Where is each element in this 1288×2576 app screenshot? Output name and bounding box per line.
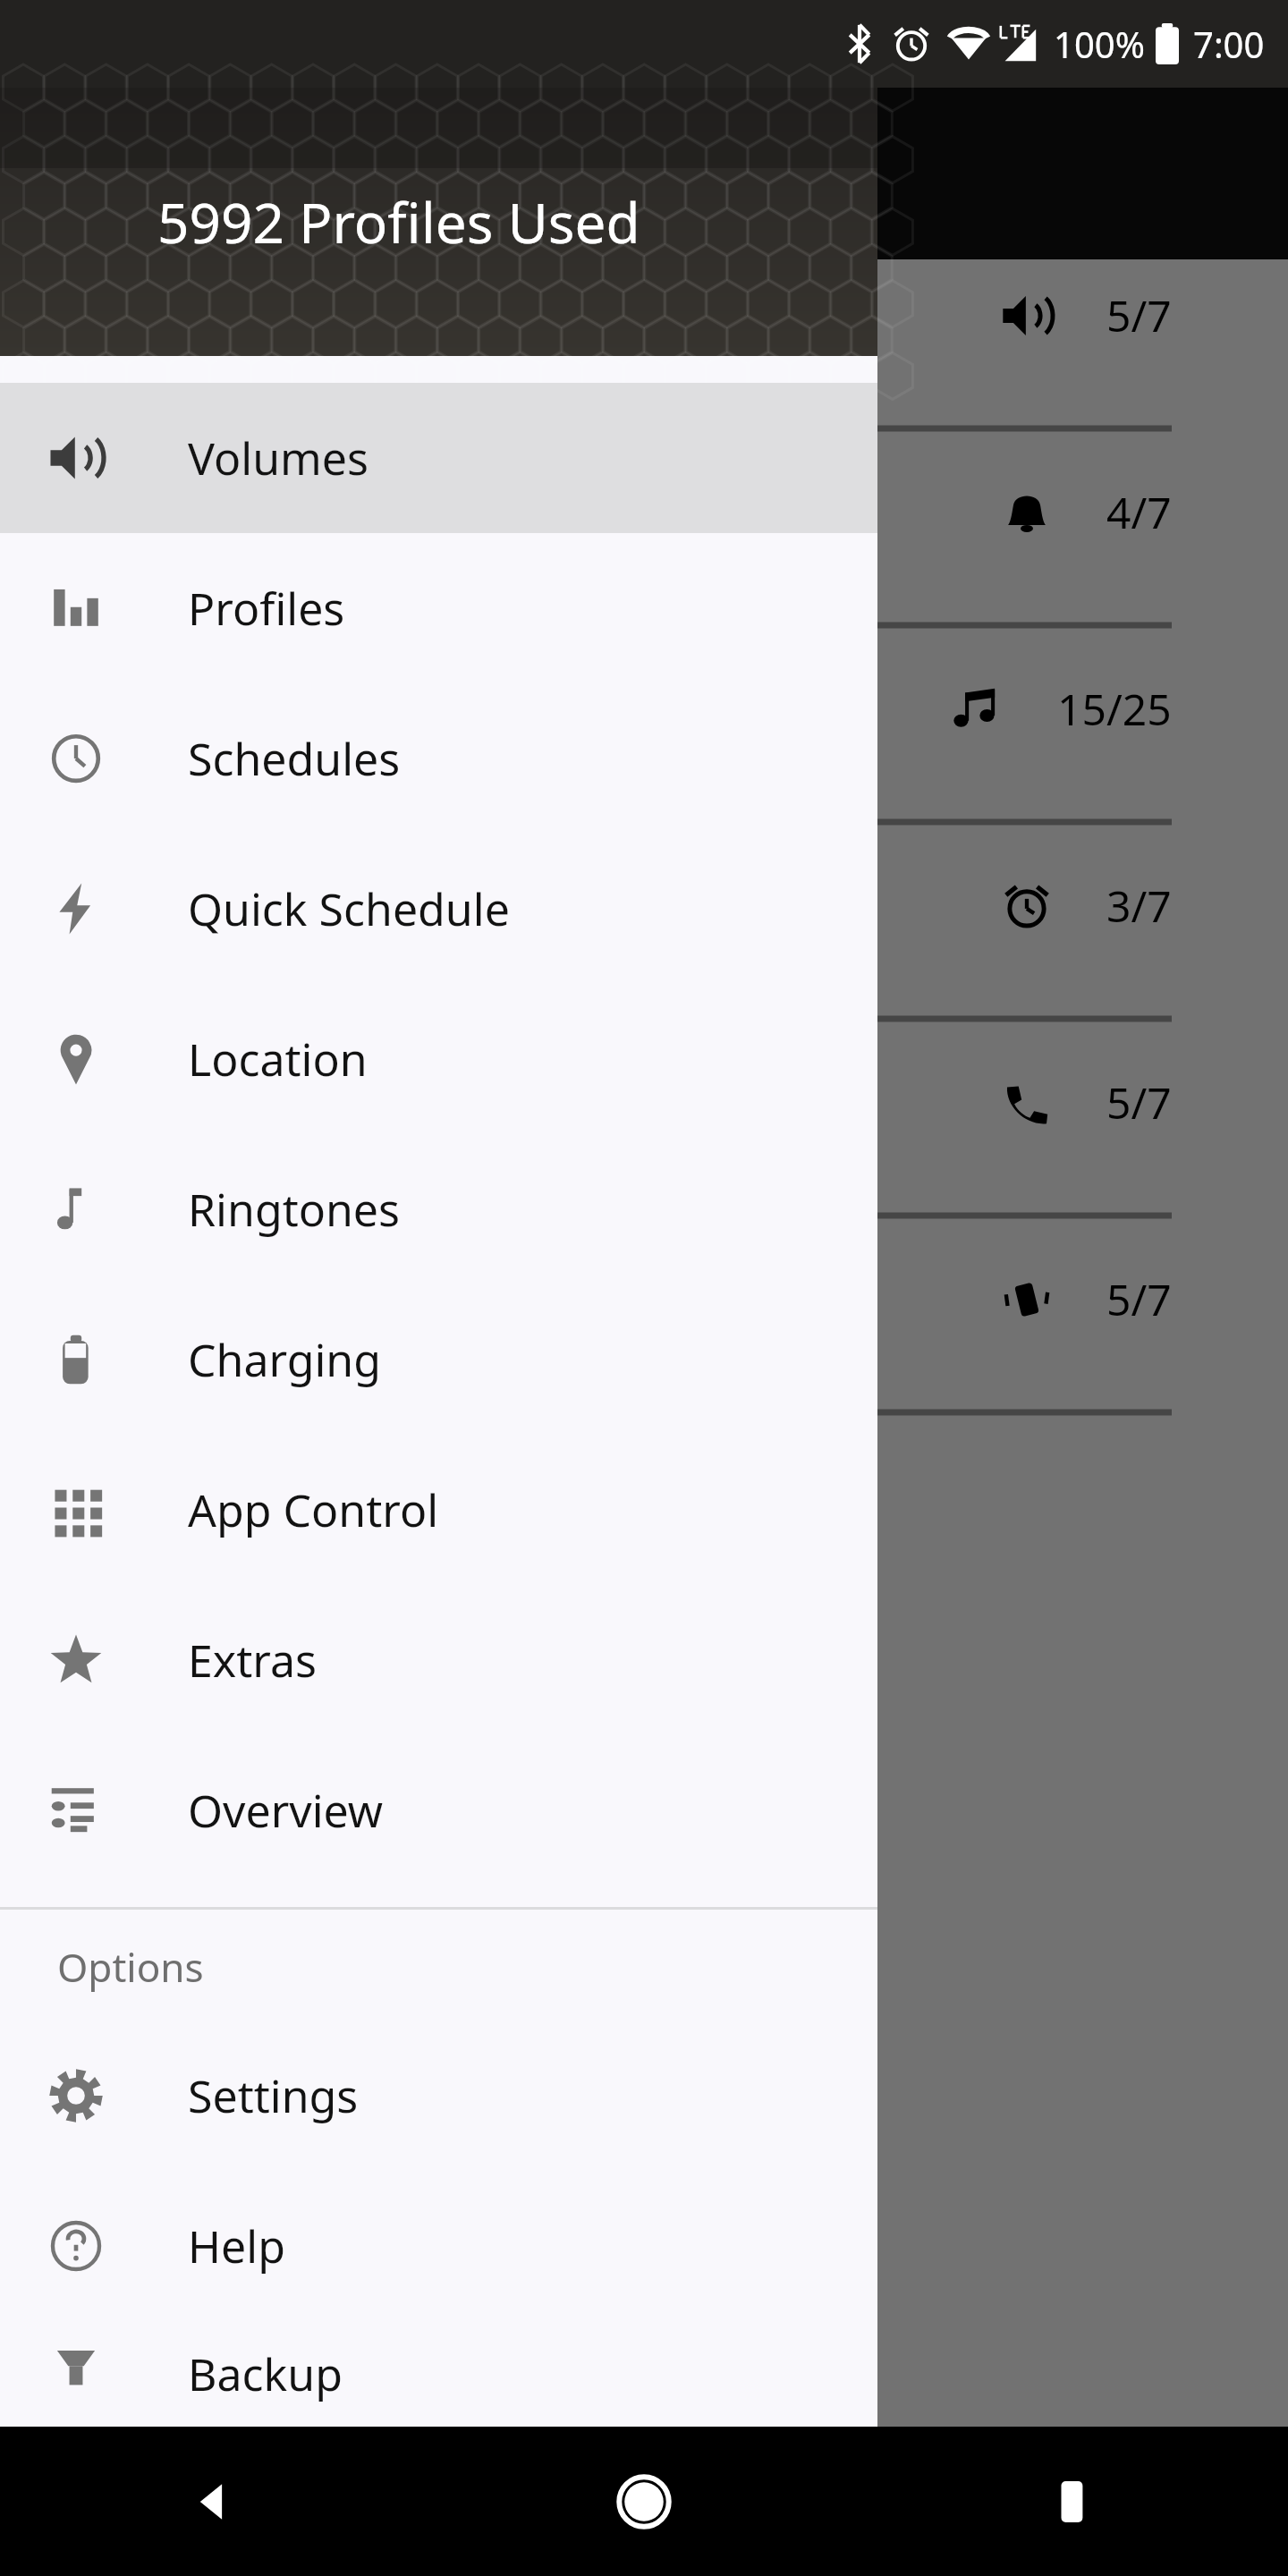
staticText: App Control — [188, 1479, 439, 1540]
button[interactable]: Overview — [0, 1735, 877, 1885]
button[interactable]: Charging — [0, 1284, 877, 1435]
staticText: Profiles — [188, 578, 345, 639]
button[interactable]: 3/7 — [0, 850, 1288, 1046]
staticText: 100% — [1054, 20, 1145, 68]
staticText: 5/7 — [1106, 286, 1172, 344]
staticText: Quick Schedule — [188, 878, 510, 939]
button[interactable]: Settings — [0, 2021, 877, 2171]
button[interactable]: Extras — [0, 1585, 877, 1735]
staticText: 5992 Profiles Used — [157, 184, 640, 259]
button[interactable]: Quick Schedule — [0, 834, 877, 984]
button[interactable]: Backup — [0, 2321, 877, 2427]
staticText: Volumes — [188, 428, 369, 488]
staticText: Ringtones — [188, 1179, 400, 1240]
button[interactable]: 15/25 — [0, 653, 1288, 850]
button[interactable]: 5/7 — [0, 1046, 1288, 1243]
button[interactable]: Profiles — [0, 533, 877, 683]
staticText: 4/7 — [1106, 483, 1172, 541]
staticText: Help — [188, 2216, 285, 2276]
button[interactable]: Recents — [859, 2427, 1288, 2576]
staticText: 3/7 — [1106, 877, 1172, 935]
staticText: Extras — [188, 1630, 317, 1690]
button[interactable]: Volumes — [0, 383, 877, 533]
staticText: Schedules — [188, 728, 401, 789]
button[interactable]: Home — [429, 2427, 859, 2576]
button[interactable]: 5/7 — [0, 1243, 1288, 1440]
staticText: 5/7 — [1106, 1270, 1172, 1328]
staticText: Settings — [188, 2065, 359, 2126]
staticText: 7:00 — [1193, 20, 1265, 68]
staticText: Location — [188, 1029, 368, 1089]
staticText: Backup — [188, 2343, 343, 2404]
button[interactable]: 4/7 — [0, 456, 1288, 653]
button[interactable]: Ringtones — [0, 1134, 877, 1284]
button[interactable]: 5/7 — [0, 259, 1288, 456]
staticText: Overview — [188, 1780, 384, 1841]
button[interactable]: Back — [0, 2427, 429, 2576]
button[interactable]: Location — [0, 984, 877, 1134]
button[interactable]: Help — [0, 2171, 877, 2321]
staticText: Options — [57, 1940, 204, 1994]
button[interactable]: Schedules — [0, 683, 877, 834]
button[interactable]: App Control — [0, 1435, 877, 1585]
staticText: 15/25 — [1057, 680, 1172, 738]
staticText: 5/7 — [1106, 1073, 1172, 1131]
staticText: Charging — [188, 1329, 381, 1390]
